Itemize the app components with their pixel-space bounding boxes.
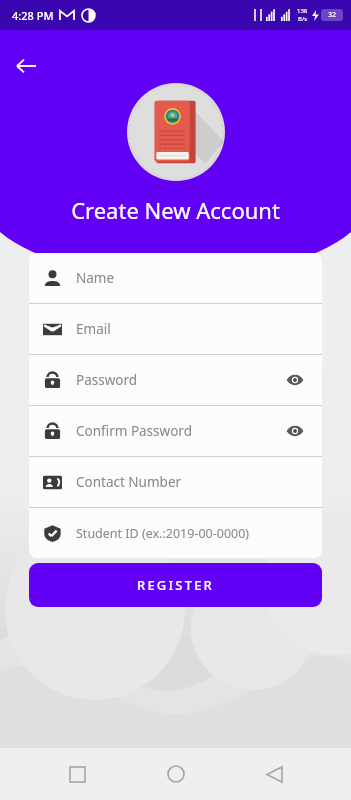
button[interactable]: Name (29, 253, 322, 303)
staticText: Confirm Password (76, 422, 192, 440)
staticText: 4:28 PM (12, 8, 54, 23)
button[interactable]: Email (29, 304, 322, 354)
button[interactable]: Back (252, 752, 296, 796)
button[interactable]: Confirm Password (29, 406, 322, 456)
button[interactable]: Password (29, 355, 322, 405)
button[interactable]: Student ID (ex.:2019-00-0000) (29, 508, 322, 558)
button[interactable]: Contact Number (29, 457, 322, 507)
staticText: 138 (297, 7, 308, 15)
button[interactable]: Toggle password visibility (282, 367, 308, 393)
staticText: Email (76, 320, 111, 338)
button[interactable]: Recent apps (55, 752, 99, 796)
staticText: Contact Number (76, 473, 182, 491)
staticText: Student ID (ex.:2019-00-0000) (76, 525, 250, 542)
staticText: Name (76, 269, 115, 287)
button[interactable]: Home (154, 752, 198, 796)
button[interactable]: REGISTER (29, 563, 322, 607)
button[interactable]: Toggle password visibility (282, 418, 308, 444)
staticText: Password (76, 371, 138, 389)
button[interactable]: Back (8, 48, 44, 84)
staticText: REGISTER (137, 576, 215, 594)
staticText: 32 (328, 10, 337, 20)
staticText: B/s (298, 15, 308, 23)
staticText: Create New Account (0, 195, 351, 225)
